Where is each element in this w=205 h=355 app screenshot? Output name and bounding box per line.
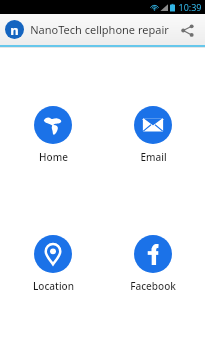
button[interactable]: Home — [12, 106, 94, 164]
button[interactable]: App icon — [5, 20, 24, 39]
staticText: Home — [39, 150, 68, 164]
staticText: 10:39 — [178, 1, 202, 13]
button[interactable]: Location — [12, 235, 94, 293]
button[interactable]: Facebook — [112, 235, 194, 293]
button[interactable]: Share — [174, 17, 200, 43]
button[interactable]: Email — [112, 106, 194, 164]
staticText: Facebook — [130, 279, 176, 293]
staticText: n — [10, 21, 19, 39]
staticText: NanoTech cellphone repair — [30, 22, 169, 37]
staticText: Location — [33, 279, 74, 293]
staticText: Email — [140, 150, 167, 164]
